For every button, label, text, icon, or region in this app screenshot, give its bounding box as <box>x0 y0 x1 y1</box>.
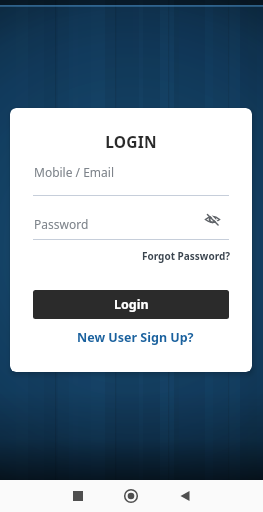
button[interactable] <box>180 491 190 501</box>
button[interactable]: New User Sign Up? <box>14 329 252 346</box>
staticText: Forgot Password? <box>142 249 231 263</box>
button[interactable]: Login <box>33 290 229 319</box>
staticText: New User Sign Up? <box>77 329 194 346</box>
staticText: Login <box>114 296 149 313</box>
staticText: LOGIN <box>10 131 252 152</box>
button[interactable] <box>124 489 138 503</box>
button[interactable] <box>204 211 221 228</box>
button[interactable]: Forgot Password? <box>10 249 231 263</box>
staticText: Mobile / Email <box>34 164 115 180</box>
staticText: Password <box>34 216 89 232</box>
